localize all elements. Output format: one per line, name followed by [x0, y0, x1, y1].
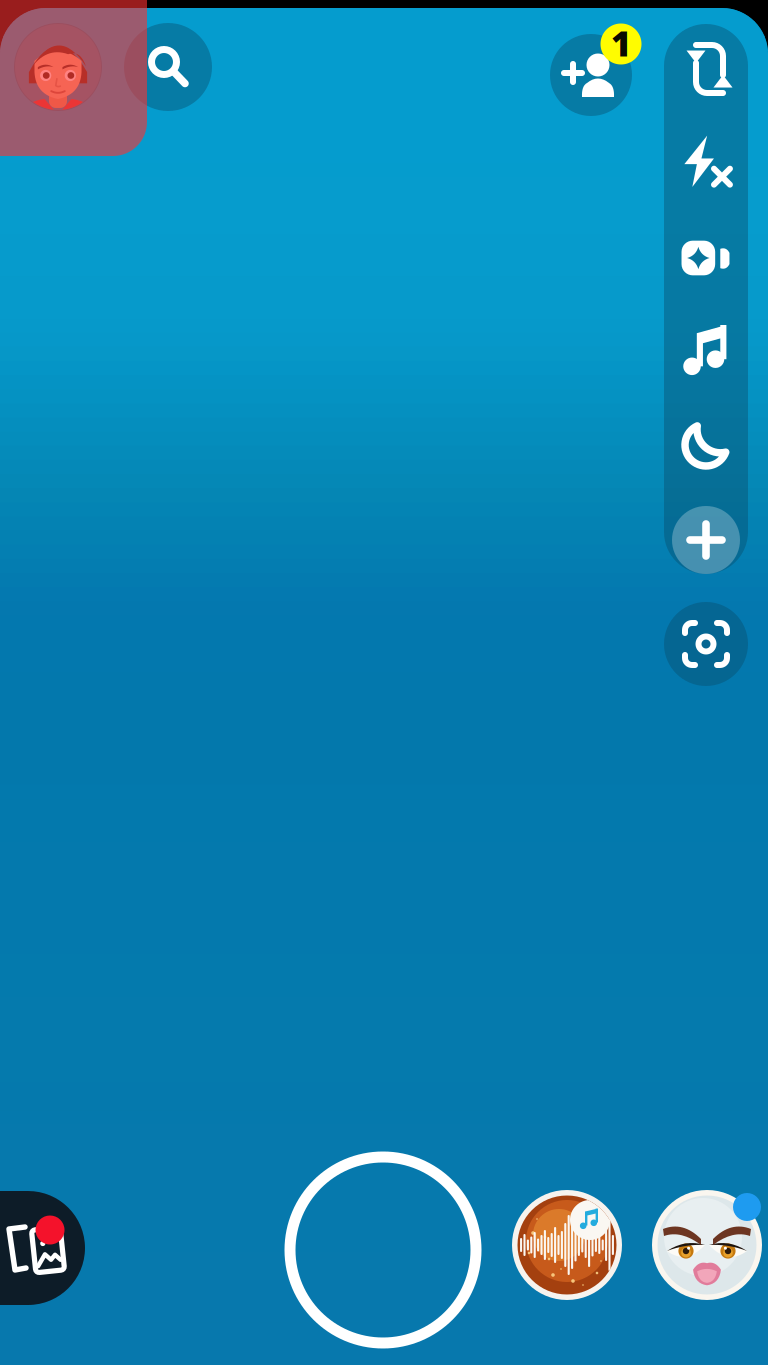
button[interactable]: Search — [124, 23, 212, 111]
button[interactable]: Sound lens — [512, 1190, 622, 1300]
button[interactable]: Memories — [0, 1191, 85, 1305]
button[interactable]: Flash off — [664, 117, 748, 209]
button[interactable]: Add friends — [550, 16, 650, 116]
button[interactable]: Scan — [664, 602, 748, 686]
button[interactable]: Face lens — [652, 1190, 762, 1300]
button[interactable]: Director mode — [664, 212, 748, 304]
button[interactable]: Sounds — [664, 304, 748, 396]
button[interactable]: Capture — [284, 1151, 482, 1349]
button[interactable]: Flip camera — [664, 23, 748, 115]
staticText: 1 — [611, 20, 631, 66]
button[interactable]: Night mode — [664, 399, 748, 491]
button[interactable]: Profile — [14, 23, 102, 111]
button[interactable]: More — [664, 494, 748, 586]
